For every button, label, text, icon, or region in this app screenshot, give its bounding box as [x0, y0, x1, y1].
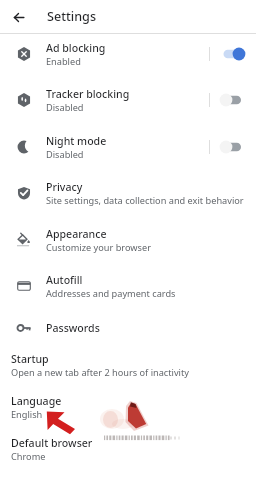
staticText: Disabled — [46, 148, 84, 161]
staticText: Privacy — [46, 180, 83, 194]
staticText: Enabled — [46, 55, 81, 68]
staticText: Default browser — [11, 436, 93, 450]
staticText: Addresses and payment cards — [46, 287, 176, 300]
staticText: Customize your browser — [46, 241, 151, 254]
button[interactable]: Default browser — [0, 429, 256, 470]
staticText: Startup — [11, 352, 49, 366]
staticText: Passwords — [46, 321, 100, 335]
button[interactable]: Startup — [0, 345, 256, 386]
button[interactable]: Night mode — [0, 124, 256, 170]
staticText: Language — [11, 394, 62, 408]
button[interactable]: Language — [0, 387, 256, 428]
staticText: Autofill — [46, 273, 83, 287]
staticText: Ad blocking — [46, 41, 106, 55]
staticText: Site settings, data collection and exit … — [46, 194, 244, 207]
staticText: Open a new tab after 2 hours of inactivi… — [11, 366, 189, 379]
staticText: Chrome — [11, 450, 46, 463]
staticText: Settings — [47, 8, 97, 25]
button[interactable]: Autofill — [0, 263, 256, 309]
button[interactable]: Appearance — [0, 217, 256, 263]
button[interactable]: Tracker blocking — [0, 77, 256, 123]
staticText: Tracker blocking — [46, 87, 130, 101]
staticText: English — [11, 408, 43, 421]
button[interactable]: Privacy — [0, 170, 256, 216]
button[interactable]: Passwords — [0, 309, 256, 346]
button[interactable]: Back — [4, 2, 34, 32]
staticText: Night mode — [46, 134, 107, 148]
button[interactable]: Ad blocking — [0, 31, 256, 77]
staticText: Disabled — [46, 101, 84, 114]
staticText: Appearance — [46, 227, 107, 241]
